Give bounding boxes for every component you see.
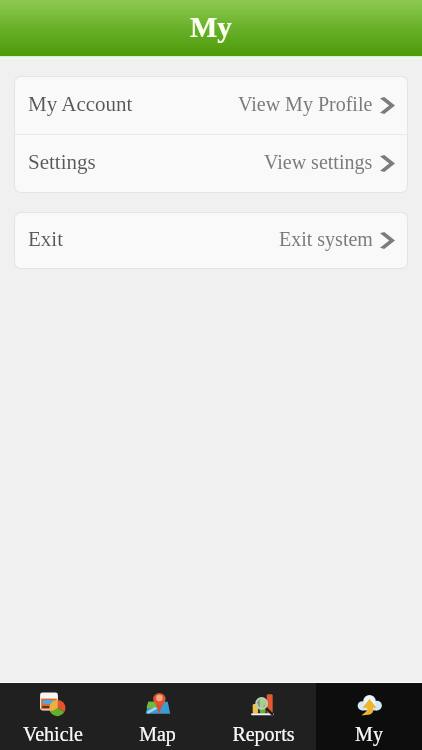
button[interactable]: Vehicle <box>0 683 105 750</box>
staticText: My Account <box>28 92 133 115</box>
staticText: Map <box>139 723 176 745</box>
other: Map <box>144 691 171 718</box>
button[interactable]: My <box>316 683 422 750</box>
button[interactable]: Settings <box>15 135 407 192</box>
other: My <box>356 691 383 718</box>
staticText: View settings <box>264 151 373 173</box>
button[interactable]: Map <box>105 683 210 750</box>
staticText: Exit <box>28 227 63 250</box>
staticText: Settings <box>28 150 96 173</box>
staticText: Exit system <box>279 228 373 250</box>
staticText: Vehicle <box>23 723 83 745</box>
button[interactable]: Reports <box>210 683 316 750</box>
other: Vehicle <box>39 691 66 718</box>
staticText: Reports <box>232 723 295 745</box>
other: Reports <box>250 691 277 718</box>
staticText: My <box>190 11 232 43</box>
staticText: View My Profile <box>238 93 373 115</box>
button[interactable]: Exit <box>15 213 407 268</box>
staticText: My <box>355 723 383 745</box>
button[interactable]: My Account <box>15 77 407 134</box>
